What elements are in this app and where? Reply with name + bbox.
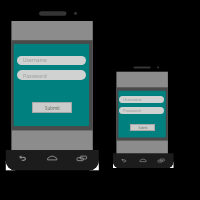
button[interactable]: Recent apps (157, 157, 164, 163)
button[interactable]: Username (119, 96, 164, 103)
button[interactable]: Password (17, 70, 86, 80)
staticText: Password (123, 108, 141, 113)
button[interactable]: Submit (131, 125, 154, 130)
staticText: Username (23, 57, 47, 64)
staticText: Username (123, 97, 142, 102)
button[interactable]: Password (119, 107, 164, 114)
button[interactable]: Recent apps (76, 154, 87, 163)
button[interactable]: Submit (33, 103, 71, 112)
button[interactable]: Username (17, 56, 86, 65)
button[interactable]: Back (17, 154, 28, 163)
button[interactable]: Back (120, 157, 127, 163)
staticText: Submit (138, 126, 148, 130)
staticText: Submit (45, 105, 60, 111)
staticText: Password (23, 72, 47, 79)
button[interactable]: Home (47, 154, 58, 163)
button[interactable]: Home (139, 157, 146, 163)
